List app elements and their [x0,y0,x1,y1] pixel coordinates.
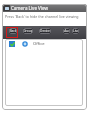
button[interactable]: Group [23,28,33,34]
button[interactable]: Office [5,39,83,49]
staticText: Camera Live View [11,5,48,11]
button[interactable]: Live [72,28,79,34]
staticText: Aux [64,29,70,33]
staticText: Device [40,29,50,33]
button[interactable]: Back [9,28,17,34]
staticText: Live [73,29,79,33]
button[interactable]: Aux [63,28,70,34]
staticText: Group [23,29,33,33]
staticText: Press 'Back' to hide the channel live vi… [5,14,79,19]
staticText: Office [33,41,45,47]
button[interactable]: Device [39,28,51,34]
other: Camera [3,5,10,11]
staticText: Back [9,29,17,33]
